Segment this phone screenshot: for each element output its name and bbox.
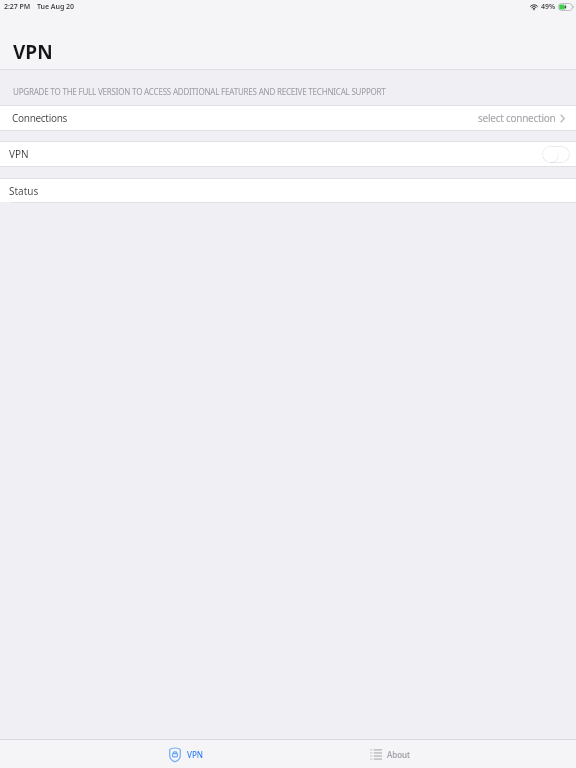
staticText: Status	[9, 184, 39, 198]
staticText: 49%	[541, 2, 555, 12]
staticText: About	[387, 749, 411, 760]
staticText: VPN	[9, 147, 29, 161]
staticText: Tue Aug 20	[37, 2, 74, 12]
button[interactable]: VPN	[0, 142, 576, 166]
button[interactable]: Status	[0, 179, 576, 202]
staticText: UPGRADE TO THE FULL VERSION TO ACCESS AD…	[13, 86, 386, 97]
staticText: Connections	[12, 111, 68, 125]
button[interactable]: About	[288, 740, 492, 768]
staticText: select connection	[478, 111, 556, 125]
staticText: 2:27 PM	[4, 2, 31, 12]
staticText: VPN	[187, 749, 204, 760]
button[interactable]: VPN toggle	[542, 146, 570, 163]
staticText: VPN	[13, 39, 53, 65]
button[interactable]: VPN	[84, 740, 288, 768]
button[interactable]: Connections	[0, 106, 576, 130]
